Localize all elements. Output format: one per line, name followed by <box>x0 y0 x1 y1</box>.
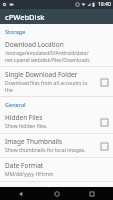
button[interactable]: Back <box>7 187 35 200</box>
button[interactable]: Hidden Files <box>0 110 113 133</box>
staticText: Download files from all accounts to the … <box>5 80 96 93</box>
staticText: Hidden Files <box>5 113 43 122</box>
button[interactable]: Image Thumbnails <box>0 134 113 157</box>
staticText: Image Thumbnails <box>5 137 63 146</box>
staticText: Date Format <box>5 161 44 170</box>
button[interactable]: Date Format <box>0 158 113 181</box>
staticText: MM/dd/yyyy HH:mm <box>5 171 54 178</box>
button[interactable]: Single Download Folder <box>0 67 113 96</box>
button[interactable]: Toggle Hidden Files <box>98 116 110 128</box>
staticText: Show thumbnails for local images. <box>5 147 86 154</box>
staticText: Storage <box>5 28 26 35</box>
button[interactable]: Toggle Image Thumbnails <box>98 140 110 152</box>
button[interactable]: Home <box>43 187 71 200</box>
staticText: Download Location <box>5 40 64 49</box>
staticText: Single Download Folder <box>5 70 78 79</box>
button[interactable]: Toggle Single Download Folder <box>98 76 110 88</box>
staticText: cPWebDisk <box>5 12 45 22</box>
button[interactable]: Download Location <box>0 37 113 66</box>
button[interactable]: Recent apps <box>78 187 106 200</box>
staticText: Show hidden files. <box>5 123 48 130</box>
staticText: /storage/emulated/0/Android/data/ net.cp… <box>5 50 90 63</box>
staticText: General <box>5 101 26 108</box>
staticText: 10:40 <box>98 1 111 8</box>
